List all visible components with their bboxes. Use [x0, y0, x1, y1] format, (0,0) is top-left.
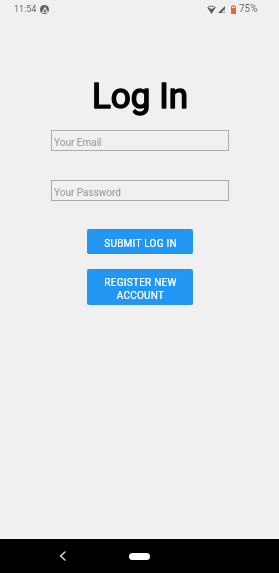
- button[interactable]: Your Password: [51, 180, 229, 201]
- staticText: Your Password: [54, 187, 121, 199]
- staticText: SUBMIT LOG IN: [104, 238, 177, 250]
- staticText: 11:54: [14, 4, 37, 15]
- staticText: Log In: [92, 76, 188, 117]
- staticText: REGISTER NEW ACCOUNT: [104, 277, 177, 301]
- button[interactable]: REGISTER NEW ACCOUNT: [87, 269, 193, 305]
- staticText: Your Email: [54, 137, 102, 149]
- staticText: 75%: [239, 3, 258, 15]
- button[interactable]: Back: [50, 544, 74, 568]
- button[interactable]: Home: [129, 553, 150, 560]
- button[interactable]: SUBMIT LOG IN: [87, 229, 193, 254]
- button[interactable]: Your Email: [51, 130, 229, 151]
- staticText: Log In: [92, 76, 188, 117]
